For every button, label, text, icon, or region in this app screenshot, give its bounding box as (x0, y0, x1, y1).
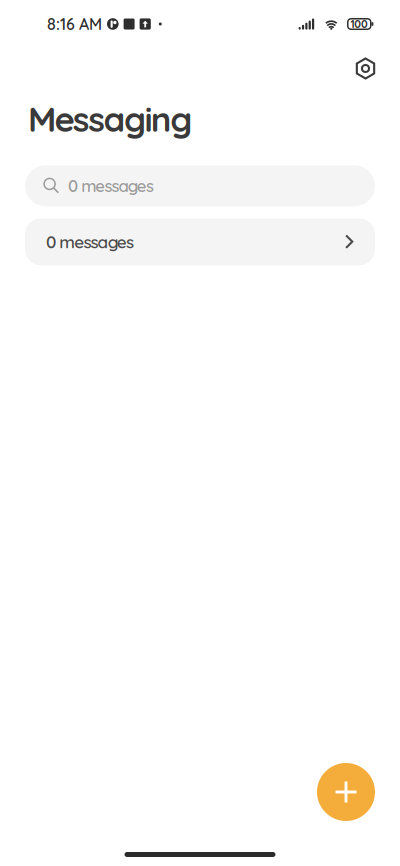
staticText: 0 messages (46, 231, 134, 252)
staticText: 0 messages (68, 175, 154, 196)
button[interactable]: New message (317, 763, 375, 821)
staticText: 100 (351, 17, 368, 31)
staticText: 8:16 AM (47, 14, 102, 34)
staticText: Messaging (28, 97, 192, 140)
button[interactable]: Settings (347, 50, 384, 87)
button[interactable]: 0 messages (25, 218, 375, 265)
button[interactable]: 0 messages (25, 165, 375, 206)
